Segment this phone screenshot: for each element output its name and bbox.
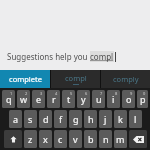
button[interactable]: o bbox=[122, 90, 135, 108]
button[interactable]: p bbox=[137, 90, 148, 108]
staticText: compl bbox=[90, 51, 114, 62]
staticText: compl bbox=[65, 73, 87, 83]
button[interactable]: q bbox=[2, 90, 15, 108]
button[interactable]: s bbox=[24, 110, 37, 128]
staticText: c bbox=[58, 133, 63, 145]
staticText: o bbox=[126, 93, 132, 105]
button[interactable]: v bbox=[69, 130, 82, 148]
staticText: comply bbox=[113, 74, 139, 84]
button[interactable]: j bbox=[99, 110, 112, 128]
staticText: m bbox=[116, 133, 125, 145]
button[interactable]: f bbox=[54, 110, 67, 128]
staticText: 5 bbox=[70, 91, 73, 96]
button[interactable]: a bbox=[9, 110, 22, 128]
staticText: h bbox=[88, 113, 94, 125]
staticText: q bbox=[6, 93, 12, 105]
button[interactable]: e bbox=[32, 90, 45, 108]
staticText: b bbox=[88, 133, 94, 145]
button[interactable]: y bbox=[77, 90, 90, 108]
staticText: 8 bbox=[115, 91, 118, 96]
button[interactable]: compl bbox=[51, 70, 100, 88]
staticText: f bbox=[59, 113, 63, 125]
button[interactable]: h bbox=[84, 110, 97, 128]
button[interactable]: Backspace bbox=[129, 130, 147, 148]
button[interactable]: m bbox=[114, 130, 127, 148]
button[interactable]: t bbox=[62, 90, 75, 108]
staticText: v bbox=[73, 133, 78, 145]
staticText: complete bbox=[9, 74, 42, 84]
staticText: e bbox=[36, 93, 42, 105]
staticText: 9 bbox=[130, 91, 133, 96]
button[interactable]: n bbox=[99, 130, 112, 148]
button[interactable]: l bbox=[129, 110, 142, 128]
button[interactable]: x bbox=[39, 130, 52, 148]
button[interactable]: comply bbox=[101, 70, 150, 88]
staticText: 1 bbox=[10, 91, 13, 96]
button[interactable]: g bbox=[69, 110, 82, 128]
staticText: z bbox=[28, 133, 33, 145]
staticText: x bbox=[43, 133, 48, 145]
staticText: g bbox=[73, 113, 79, 125]
staticText: 0 bbox=[143, 91, 146, 96]
staticText: Suggestions help you bbox=[7, 51, 90, 62]
button[interactable]: b bbox=[84, 130, 97, 148]
staticText: n bbox=[103, 133, 109, 145]
staticText: k bbox=[118, 113, 123, 125]
button[interactable]: w bbox=[17, 90, 30, 108]
staticText: r bbox=[52, 93, 56, 105]
button[interactable]: r bbox=[47, 90, 60, 108]
button[interactable]: complete bbox=[0, 70, 50, 88]
button[interactable]: i bbox=[107, 90, 120, 108]
button[interactable]: k bbox=[114, 110, 127, 128]
button[interactable]: d bbox=[39, 110, 52, 128]
staticText: i bbox=[112, 93, 115, 105]
button[interactable]: u bbox=[92, 90, 105, 108]
staticText: j bbox=[104, 113, 107, 125]
staticText: t bbox=[67, 93, 71, 105]
staticText: 7 bbox=[100, 91, 103, 96]
staticText: s bbox=[28, 113, 33, 125]
staticText: 3 bbox=[40, 91, 43, 96]
staticText: y bbox=[81, 93, 86, 105]
button[interactable]: z bbox=[24, 130, 37, 148]
button[interactable]: Shift bbox=[4, 130, 22, 148]
staticText: 2 bbox=[25, 91, 28, 96]
staticText: u bbox=[96, 93, 102, 105]
staticText: 6 bbox=[85, 91, 88, 96]
staticText: w bbox=[20, 93, 28, 105]
staticText: d bbox=[43, 113, 49, 125]
staticText: l bbox=[134, 113, 137, 125]
staticText: p bbox=[140, 93, 146, 105]
staticText: a bbox=[13, 113, 19, 125]
staticText: 4 bbox=[55, 91, 58, 96]
button[interactable]: c bbox=[54, 130, 67, 148]
